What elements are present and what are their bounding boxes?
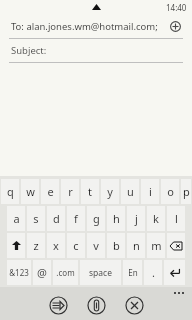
button[interactable]: . [144, 260, 162, 285]
button[interactable] [7, 233, 25, 258]
button[interactable]: More options [174, 292, 184, 294]
staticText: r [68, 184, 73, 199]
button[interactable]: f [67, 206, 85, 231]
staticText: y [107, 184, 113, 199]
staticText: space [89, 267, 112, 279]
button[interactable]: Send [47, 294, 69, 316]
staticText: c [73, 238, 79, 253]
button[interactable]: n [127, 233, 145, 258]
button[interactable]: a [7, 206, 25, 231]
button[interactable]: d [47, 206, 65, 231]
staticText: To: alan.jones.wm@hotmail.com; [11, 20, 158, 33]
button[interactable]: g [87, 206, 105, 231]
button[interactable]: y [101, 179, 119, 204]
button[interactable]: r [61, 179, 79, 204]
staticText: w [26, 184, 35, 199]
staticText: s [33, 211, 39, 226]
button[interactable]: .com [53, 260, 78, 285]
button[interactable] [167, 233, 185, 258]
button[interactable]: En [123, 260, 142, 285]
button[interactable]: o [161, 179, 179, 204]
staticText: i [149, 184, 152, 199]
staticText: Subject: [11, 44, 47, 57]
button[interactable]: &123 [7, 260, 31, 285]
button[interactable]: p [181, 179, 191, 204]
staticText: f [74, 211, 78, 226]
button[interactable]: i [141, 179, 159, 204]
button[interactable]: k [147, 206, 165, 231]
staticText: j [135, 211, 138, 226]
staticText: x [53, 238, 59, 253]
staticText: En [128, 267, 138, 278]
staticText: z [33, 238, 39, 253]
button[interactable]: @ [33, 260, 51, 285]
button[interactable]: h [107, 206, 125, 231]
staticText: v [93, 238, 99, 253]
staticText: o [167, 184, 174, 199]
button[interactable]: m [147, 233, 165, 258]
staticText: g [93, 211, 100, 226]
button[interactable]: To: alan.jones.wm@hotmail.com; [0, 14, 192, 38]
staticText: &123 [9, 267, 29, 278]
button[interactable]: z [27, 233, 45, 258]
button[interactable]: b [107, 233, 125, 258]
button[interactable]: s [27, 206, 45, 231]
button[interactable]: w [21, 179, 39, 204]
button[interactable]: u [121, 179, 139, 204]
staticText: .com [56, 267, 75, 278]
button[interactable]: e [41, 179, 59, 204]
button[interactable]: Subject: [0, 39, 192, 62]
staticText: @ [37, 265, 47, 280]
staticText: m [151, 238, 162, 253]
staticText: u [127, 184, 134, 199]
button[interactable]: t [81, 179, 99, 204]
staticText: b [113, 238, 120, 253]
button[interactable]: v [87, 233, 105, 258]
staticText: e [47, 184, 54, 199]
staticText: p [183, 184, 190, 199]
staticText: d [53, 211, 60, 226]
staticText: k [153, 211, 159, 226]
staticText: h [113, 211, 120, 226]
staticText: t [88, 184, 92, 199]
button[interactable]: x [47, 233, 65, 258]
button[interactable] [164, 260, 185, 285]
button[interactable]: space [80, 260, 121, 285]
staticText: q [7, 184, 14, 199]
button[interactable]: c [67, 233, 85, 258]
button[interactable]: Add recipient [166, 17, 184, 35]
staticText: . [152, 265, 155, 280]
button[interactable]: Attach [85, 294, 107, 316]
button[interactable]: q [1, 179, 19, 204]
staticText: l [175, 211, 178, 226]
staticText: 14:40 [166, 2, 187, 13]
staticText: n [133, 238, 140, 253]
button[interactable]: Close [123, 294, 145, 316]
button[interactable]: j [127, 206, 145, 231]
staticText: a [13, 211, 20, 226]
button[interactable]: l [167, 206, 185, 231]
